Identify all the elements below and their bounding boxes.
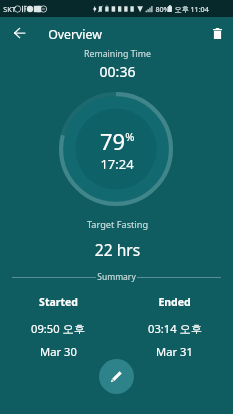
staticText: 09:50 오후	[31, 321, 85, 336]
staticText: Remaining Time	[1, 48, 233, 60]
staticText: 79%	[100, 126, 135, 156]
staticText: SKT	[3, 4, 16, 14]
staticText: Mar 31	[156, 344, 193, 359]
staticText: Summary	[97, 271, 136, 283]
staticText: 80%	[155, 4, 170, 14]
button[interactable]: Delete	[202, 18, 232, 48]
staticText: 00:36	[1, 62, 233, 81]
staticText: Mar 30	[40, 344, 77, 359]
staticText: Started	[39, 295, 78, 309]
button[interactable]: Edit	[99, 359, 134, 394]
staticText: Ended	[158, 295, 191, 309]
button[interactable]: Back	[2, 17, 36, 49]
staticText: 22 hrs	[1, 239, 233, 260]
staticText: 오후 11:04	[174, 4, 209, 14]
staticText: 03:14 오후	[148, 321, 202, 336]
staticText: Overview	[48, 26, 102, 43]
staticText: 17:24	[100, 155, 134, 173]
staticText: Target Fasting	[1, 218, 233, 231]
